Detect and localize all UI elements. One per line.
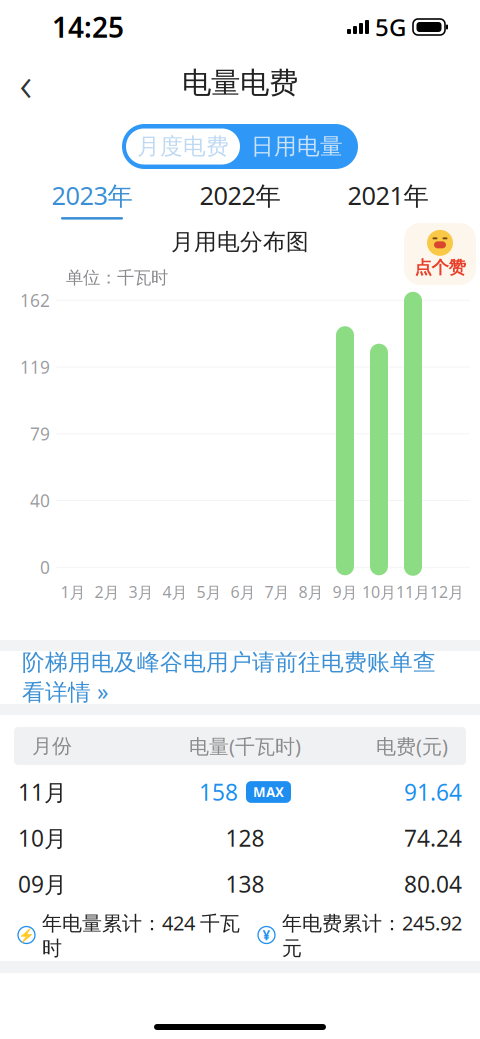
button[interactable]: 阶梯用电及峰谷电用户请前往电费账单查看详情 »	[0, 651, 480, 704]
staticText: 128	[225, 823, 264, 853]
staticText: 4月	[162, 581, 187, 602]
staticText: 09月	[18, 869, 67, 899]
staticText: 12月	[430, 581, 464, 602]
staticText: MAX	[253, 783, 284, 801]
button[interactable]: 2023年	[18, 177, 166, 221]
staticText: 40	[30, 489, 50, 512]
staticText: 10月	[362, 581, 396, 602]
staticText: 月份	[32, 734, 72, 758]
staticText: 年电量累计：424 千瓦时	[42, 909, 240, 960]
staticText: 电量(千瓦时)	[189, 733, 301, 759]
staticText: ⚡	[18, 927, 35, 943]
staticText: ¥	[262, 926, 270, 944]
button[interactable]: 月度电费	[126, 128, 240, 164]
staticText: 91.64	[404, 777, 462, 807]
staticText: 2023年	[51, 178, 132, 212]
staticText: 阶梯用电及峰谷电用户请前往电费账单查看详情 »	[22, 648, 436, 706]
staticText: 11月	[18, 777, 67, 807]
staticText: 年电费累计：245.92 元	[282, 909, 462, 960]
button[interactable]: 日用电量	[240, 128, 354, 164]
staticText: 11月	[396, 581, 430, 602]
staticText: 点个赞	[414, 257, 465, 278]
staticText: 79	[30, 422, 50, 445]
staticText: 14:25	[52, 8, 124, 46]
staticText: 74.24	[404, 823, 462, 853]
staticText: 158	[199, 777, 238, 807]
staticText: 138	[225, 869, 264, 899]
staticText: 月用电分布图	[171, 228, 309, 256]
staticText: 5G	[375, 11, 406, 43]
staticText: 9月	[332, 581, 357, 602]
staticText: 单位：千瓦时	[66, 267, 168, 288]
staticText: 10月	[18, 823, 67, 853]
staticText: 119	[20, 355, 50, 378]
staticText: 5月	[196, 581, 221, 602]
staticText: 2021年	[347, 178, 428, 212]
staticText: 月度电费	[137, 133, 229, 160]
staticText: 日用电量	[251, 133, 343, 160]
staticText: 80.04	[404, 869, 462, 899]
staticText: 2022年	[199, 178, 280, 212]
staticText: 3月	[128, 581, 153, 602]
button[interactable]: 点个赞	[404, 223, 476, 285]
button[interactable]: 2022年	[166, 177, 314, 221]
staticText: 2月	[94, 581, 119, 602]
staticText: 8月	[298, 581, 323, 602]
staticText: 6月	[230, 581, 255, 602]
staticText: 电费(元)	[376, 733, 448, 759]
staticText: ‹	[19, 51, 32, 115]
staticText: 1月	[60, 581, 85, 602]
staticText: 0	[40, 556, 50, 579]
button[interactable]: 2021年	[314, 177, 462, 221]
button[interactable]: Back	[0, 57, 52, 109]
staticText: 电量电费	[182, 65, 298, 101]
staticText: 162	[20, 289, 50, 312]
staticText: 7月	[264, 581, 289, 602]
